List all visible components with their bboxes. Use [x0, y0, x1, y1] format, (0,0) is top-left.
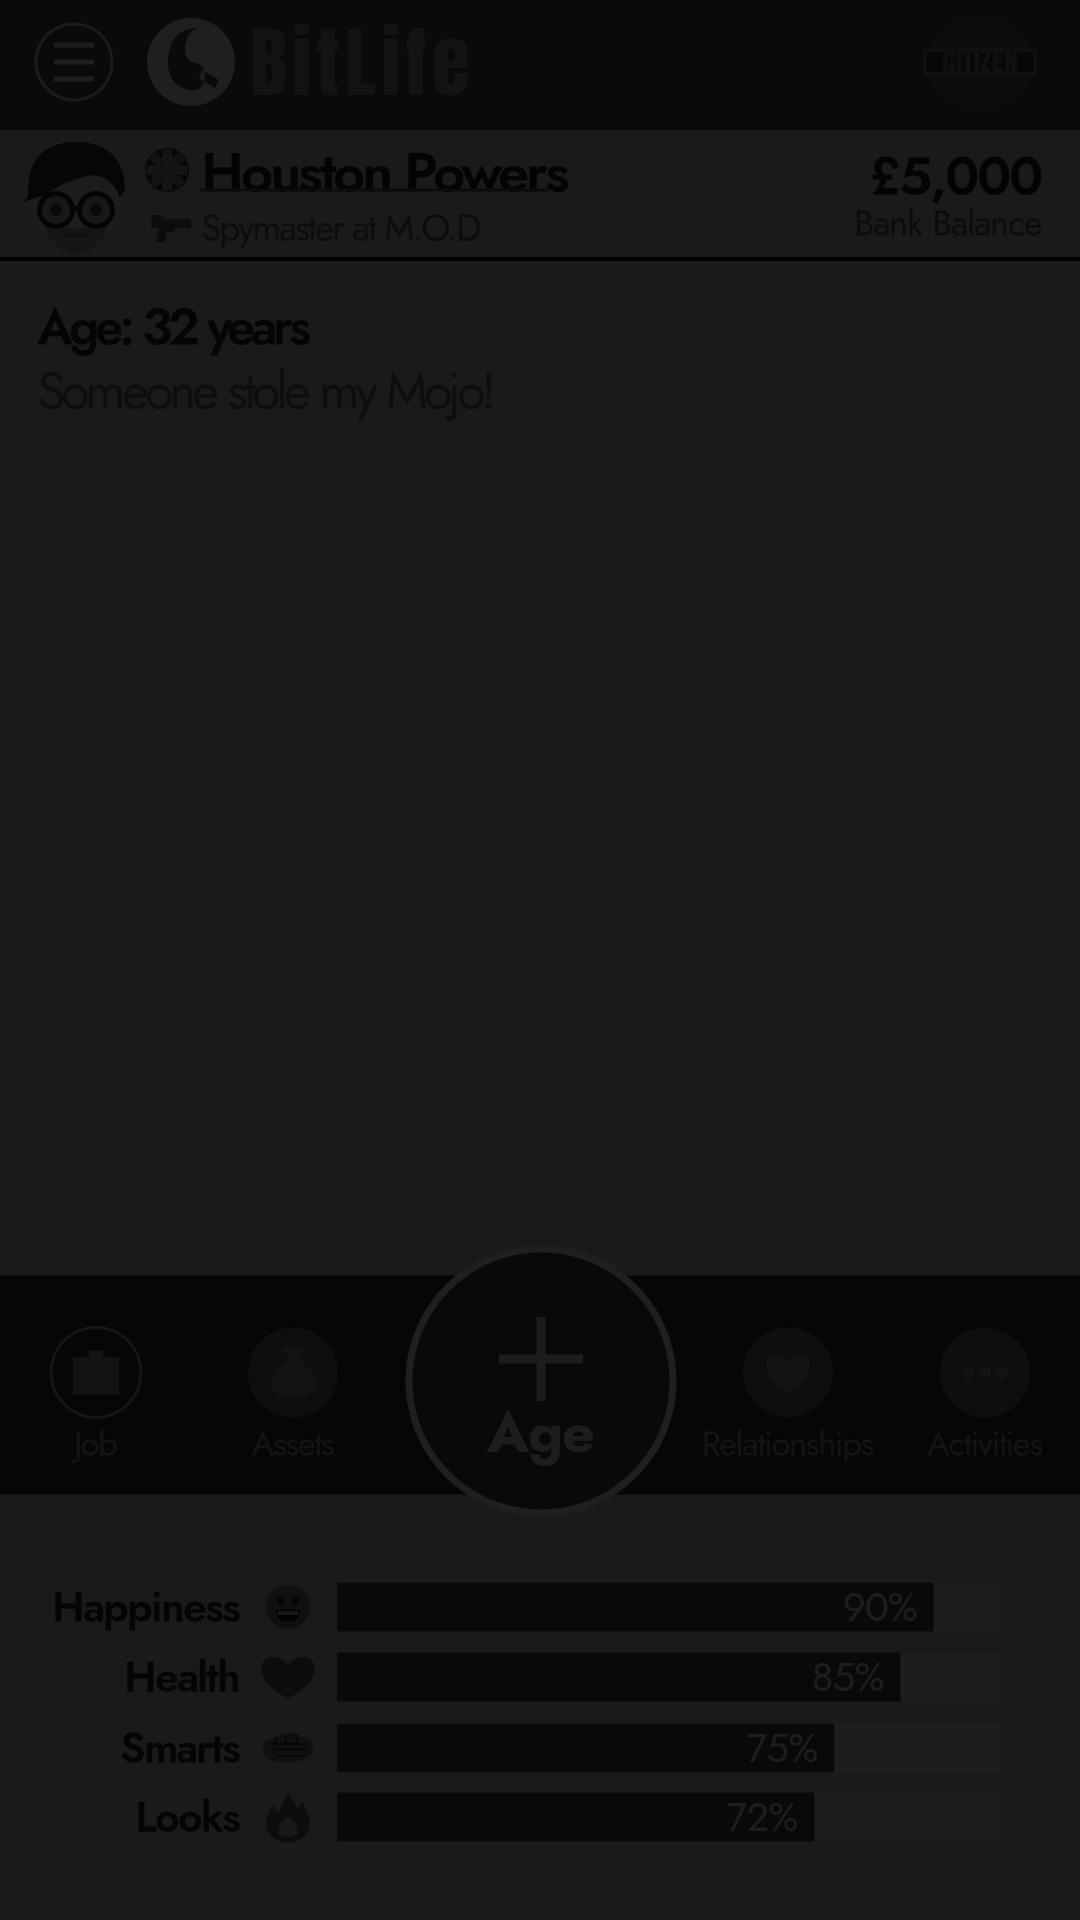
staticText: Someone stole my Mojo!	[37, 353, 497, 428]
staticText: 85%	[811, 1648, 884, 1706]
staticText: Job	[74, 1418, 118, 1469]
button[interactable]: Assets	[197, 1275, 389, 1494]
staticText: Age: 32 years	[37, 290, 311, 364]
button[interactable]: Relationships	[678, 1275, 898, 1494]
staticText: Looks	[135, 1786, 241, 1848]
staticText: 75%	[746, 1719, 818, 1777]
button[interactable]: Age up one year	[409, 1249, 673, 1513]
staticText: Spymaster at M.O.D	[201, 201, 481, 255]
staticText: Happiness	[52, 1576, 241, 1638]
staticText: Health	[124, 1646, 241, 1708]
staticText: £5,000	[869, 137, 1043, 215]
staticText: BitLife	[250, 4, 470, 120]
button[interactable]: Activities	[889, 1275, 1080, 1494]
staticText: Smarts	[120, 1717, 241, 1779]
staticText: 72%	[726, 1788, 798, 1846]
staticText: Assets	[251, 1418, 335, 1469]
button[interactable]: Job	[0, 1275, 192, 1494]
staticText: 90%	[843, 1578, 918, 1636]
staticText: Activities	[927, 1418, 1043, 1469]
staticText: Houston Powers	[201, 131, 570, 212]
staticText: Bank Balance	[854, 197, 1043, 249]
staticText: Age	[487, 1391, 595, 1473]
staticText: CITIZEN	[942, 40, 1018, 83]
button[interactable]: Menu	[28, 16, 120, 108]
staticText: Relationships	[701, 1418, 874, 1469]
